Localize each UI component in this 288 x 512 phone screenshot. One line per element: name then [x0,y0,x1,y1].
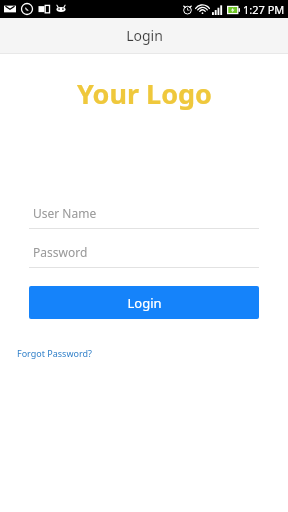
button[interactable]: Forgot Password? [15,345,94,361]
staticText: 1:27 PM [243,2,285,17]
staticText: User Name [33,205,97,221]
staticText: Login [126,26,163,45]
button[interactable]: Password [29,237,259,268]
staticText: Forgot Password? [17,347,92,359]
staticText: Login [127,294,162,312]
button[interactable]: User Name [29,198,259,229]
staticText: Your Logo [77,75,212,112]
button[interactable]: Login [29,286,259,319]
staticText: Password [33,244,88,260]
